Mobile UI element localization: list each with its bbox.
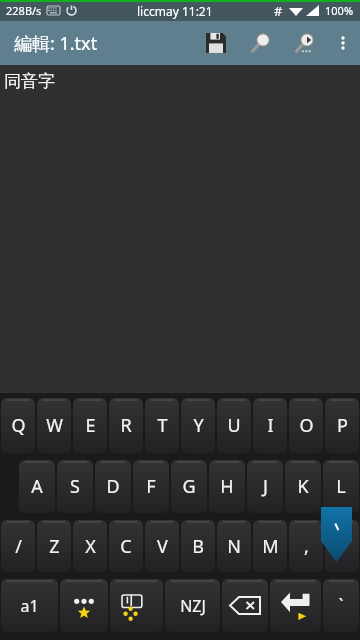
- button[interactable]: B: [181, 520, 215, 572]
- button[interactable]: E: [73, 398, 107, 453]
- staticText: T: [157, 413, 168, 438]
- button[interactable]: Enter: [270, 579, 321, 632]
- staticText: H: [220, 474, 234, 499]
- button[interactable]: S: [57, 460, 93, 513]
- button[interactable]: H: [209, 460, 245, 513]
- button[interactable]: W: [37, 398, 71, 453]
- button[interactable]: Q: [1, 398, 35, 453]
- button[interactable]: A: [19, 460, 55, 513]
- staticText: E: [85, 413, 96, 438]
- staticText: S: [70, 474, 80, 499]
- staticText: NZJ: [180, 595, 206, 617]
- staticText: a1: [20, 595, 39, 617]
- button[interactable]: U: [217, 398, 251, 453]
- staticText: W: [46, 413, 63, 438]
- staticText: 100%: [325, 3, 354, 18]
- button[interactable]: R: [109, 398, 143, 453]
- button[interactable]: C: [109, 520, 143, 572]
- staticText: U: [227, 413, 241, 438]
- button[interactable]: More options: [326, 26, 360, 60]
- staticText: X: [85, 534, 96, 559]
- button[interactable]: L: [323, 460, 359, 513]
- staticText: 編輯: 1.txt: [14, 31, 98, 56]
- staticText: Y: [193, 413, 204, 438]
- button[interactable]: ': [325, 520, 359, 572]
- staticText: Z: [49, 534, 60, 559]
- staticText: K: [297, 474, 309, 499]
- staticText: P: [337, 413, 348, 438]
- staticText: F: [146, 474, 156, 499]
- button[interactable]: NZJ: [165, 579, 220, 632]
- button[interactable]: M: [253, 520, 287, 572]
- button[interactable]: /: [1, 520, 35, 572]
- button[interactable]: a1: [1, 579, 58, 632]
- button[interactable]: X: [73, 520, 107, 572]
- button[interactable]: J: [247, 460, 283, 513]
- button[interactable]: D: [95, 460, 131, 513]
- button[interactable]: Y: [181, 398, 215, 453]
- button[interactable]: T: [145, 398, 179, 453]
- staticText: /: [15, 534, 22, 559]
- staticText: V: [157, 534, 168, 559]
- staticText: G: [182, 474, 196, 499]
- staticText: D: [106, 474, 120, 499]
- button[interactable]: Search: [238, 21, 282, 65]
- button[interactable]: F: [133, 460, 169, 513]
- button[interactable]: ,: [289, 520, 323, 572]
- staticText: A: [31, 474, 43, 499]
- button[interactable]: Search options: [282, 21, 326, 65]
- staticText: ': [340, 534, 345, 559]
- button[interactable]: `: [323, 579, 359, 632]
- staticText: R: [120, 413, 132, 438]
- button[interactable]: V: [145, 520, 179, 572]
- button[interactable]: K: [285, 460, 321, 513]
- button[interactable]: Symbols: [60, 579, 108, 632]
- button[interactable]: P: [325, 398, 359, 453]
- button[interactable]: G: [171, 460, 207, 513]
- staticText: O: [299, 413, 314, 438]
- staticText: L: [336, 474, 346, 499]
- staticText: 同音字: [4, 71, 55, 92]
- staticText: N: [227, 534, 241, 559]
- staticText: ,: [304, 534, 309, 559]
- staticText: liccmay 11:21: [137, 3, 213, 19]
- staticText: B: [192, 534, 204, 559]
- staticText: C: [120, 534, 132, 559]
- staticText: M: [262, 534, 279, 559]
- staticText: `: [338, 593, 344, 618]
- staticText: J: [263, 474, 268, 499]
- staticText: 228B/s: [6, 3, 42, 18]
- button[interactable]: Backspace: [222, 579, 268, 632]
- staticText: Q: [11, 413, 26, 438]
- button[interactable]: I: [253, 398, 287, 453]
- button[interactable]: N: [217, 520, 251, 572]
- staticText: I: [267, 413, 274, 438]
- button[interactable]: Save: [194, 21, 238, 65]
- staticText: #: [274, 2, 283, 20]
- button[interactable]: Z: [37, 520, 71, 572]
- button[interactable]: Keyboard layout: [110, 579, 163, 632]
- button[interactable]: O: [289, 398, 323, 453]
